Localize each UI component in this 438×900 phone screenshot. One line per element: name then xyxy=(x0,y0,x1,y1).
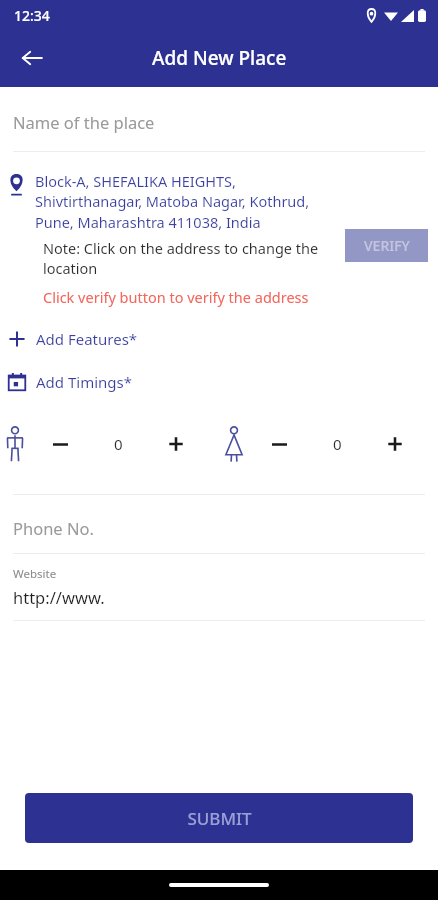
staticText: Add Timings* xyxy=(36,372,132,392)
staticText: Add New Place xyxy=(152,45,287,71)
staticText: VERIFY xyxy=(364,236,410,255)
button[interactable]: Block-A, SHEFALIKA HEIGHTS, Shivtirthana… xyxy=(0,171,345,233)
staticText: http://www. xyxy=(13,586,105,608)
staticText: Website xyxy=(13,566,57,582)
button[interactable]: Website xyxy=(13,566,425,608)
button[interactable]: Increase xyxy=(147,420,205,468)
button[interactable]: Phone No. xyxy=(13,517,425,539)
button[interactable]: SUBMIT xyxy=(25,793,413,843)
button[interactable]: Increase xyxy=(366,420,424,468)
staticText: Add Features* xyxy=(36,329,138,349)
button[interactable]: Add Features* xyxy=(0,329,438,349)
staticText: 12:34 xyxy=(14,6,50,25)
staticText: SUBMIT xyxy=(187,807,252,830)
button[interactable]: Add Timings* xyxy=(0,372,438,392)
staticText: Phone No. xyxy=(13,517,94,539)
button[interactable]: Decrease xyxy=(31,420,89,468)
button[interactable]: Decrease xyxy=(250,420,308,468)
button[interactable]: VERIFY xyxy=(345,229,428,262)
staticText: Name of the place xyxy=(13,111,155,133)
button[interactable]: Back xyxy=(8,34,56,82)
staticText: 0 xyxy=(333,434,342,454)
staticText: 0 xyxy=(114,434,123,454)
staticText: Note: Click on the address to change the… xyxy=(43,238,339,279)
staticText: Click verify button to verify the addres… xyxy=(43,287,309,307)
staticText: Block-A, SHEFALIKA HEIGHTS, Shivtirthana… xyxy=(35,171,339,233)
button[interactable]: Name of the place xyxy=(13,111,425,133)
